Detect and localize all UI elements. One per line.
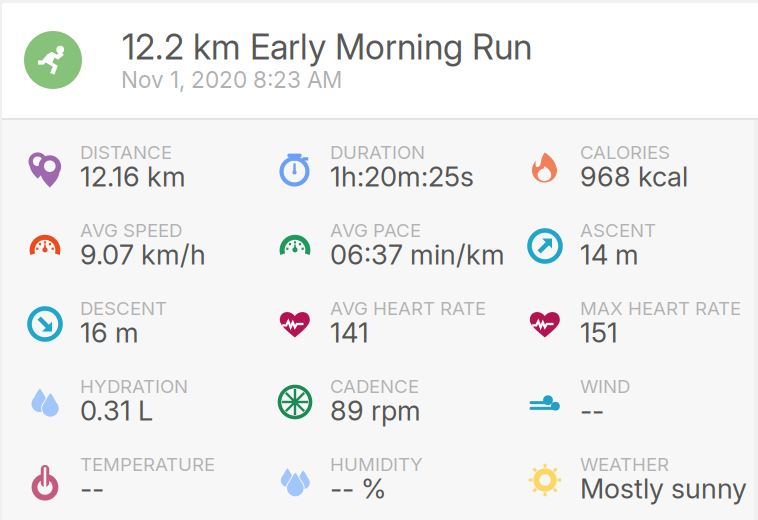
staticText: Nov 1, 2020 8:23 AM bbox=[121, 66, 342, 93]
staticText: -- bbox=[80, 472, 104, 505]
staticText: DESCENT bbox=[80, 297, 167, 320]
staticText: ASCENT bbox=[580, 219, 656, 242]
staticText: 1h:20m:25s bbox=[330, 160, 474, 193]
staticText: CADENCE bbox=[330, 375, 419, 398]
staticText: WEATHER bbox=[580, 453, 669, 476]
button[interactable]: AVG PACE bbox=[275, 198, 525, 276]
staticText: -- bbox=[580, 394, 604, 427]
staticText: 89 rpm bbox=[330, 394, 421, 427]
button[interactable]: WIND bbox=[525, 354, 758, 432]
staticText: 06:37 min/km bbox=[330, 238, 505, 271]
staticText: MAX HEART RATE bbox=[580, 297, 741, 320]
staticText: -- % bbox=[330, 472, 386, 505]
staticText: HUMIDITY bbox=[330, 453, 423, 476]
button[interactable]: DISTANCE bbox=[25, 120, 275, 198]
button[interactable]: DESCENT bbox=[25, 276, 275, 354]
staticText: TEMPERATURE bbox=[80, 453, 215, 476]
button[interactable]: MAX HEART RATE bbox=[525, 276, 758, 354]
staticText: 12.16 km bbox=[80, 160, 186, 193]
staticText: 12.2 km Early Morning Run bbox=[122, 26, 532, 68]
staticText: DURATION bbox=[330, 141, 425, 164]
staticText: 14 m bbox=[580, 238, 639, 271]
staticText: AVG SPEED bbox=[80, 219, 182, 242]
staticText: AVG HEART RATE bbox=[330, 297, 486, 320]
staticText: 141 bbox=[330, 316, 369, 349]
button[interactable]: ASCENT bbox=[525, 198, 758, 276]
staticText: HYDRATION bbox=[80, 375, 188, 398]
button[interactable]: DURATION bbox=[275, 120, 525, 198]
button[interactable]: WEATHER bbox=[525, 432, 758, 510]
staticText: 9.07 km/h bbox=[80, 238, 206, 271]
staticText: AVG PACE bbox=[330, 219, 421, 242]
button[interactable]: CALORIES bbox=[525, 120, 758, 198]
button[interactable]: AVG HEART RATE bbox=[275, 276, 525, 354]
button[interactable]: HYDRATION bbox=[25, 354, 275, 432]
staticText: CALORIES bbox=[580, 141, 670, 164]
button[interactable]: AVG SPEED bbox=[25, 198, 275, 276]
button[interactable]: TEMPERATURE bbox=[25, 432, 275, 510]
button[interactable]: HUMIDITY bbox=[275, 432, 525, 510]
staticText: 151 bbox=[580, 316, 618, 349]
staticText: 16 m bbox=[80, 316, 139, 349]
staticText: DISTANCE bbox=[80, 141, 172, 164]
staticText: 968 kcal bbox=[580, 160, 688, 193]
staticText: Mostly sunny bbox=[580, 472, 747, 505]
staticText: WIND bbox=[580, 375, 630, 398]
staticText: 0.31 L bbox=[80, 394, 153, 427]
button[interactable]: CADENCE bbox=[275, 354, 525, 432]
